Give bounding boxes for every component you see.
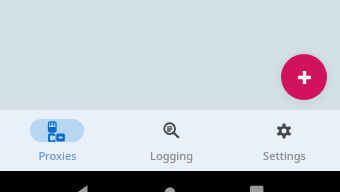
button[interactable]: Add proxy (281, 54, 327, 100)
button[interactable]: Proxies (0, 110, 114, 163)
staticText: Settings (263, 148, 306, 163)
button[interactable]: Logging (114, 110, 227, 163)
button[interactable]: Settings (227, 110, 340, 163)
staticText: Proxies (38, 148, 77, 163)
staticText: Logging (150, 148, 193, 163)
